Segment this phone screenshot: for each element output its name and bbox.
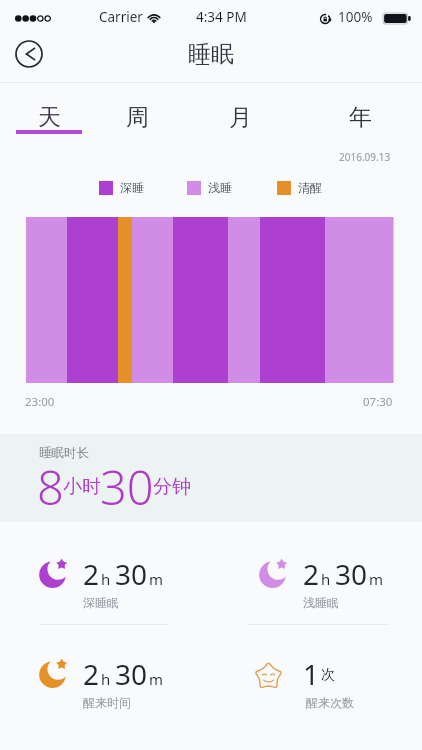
staticText: 8 <box>37 455 64 519</box>
button[interactable]: 清醒 <box>277 180 322 195</box>
staticText: 深睡 <box>120 180 144 195</box>
staticText: 年 <box>349 103 372 132</box>
staticText: 次 <box>321 666 335 684</box>
button[interactable]: 浅睡 <box>187 180 232 195</box>
staticText: 2 <box>83 555 100 593</box>
staticText: 清醒 <box>298 180 322 195</box>
button[interactable]: 深睡 <box>99 180 144 195</box>
staticText: 醒来次数 <box>306 695 354 710</box>
button[interactable]: 1 <box>220 645 422 725</box>
staticText: 30 <box>115 655 148 693</box>
button[interactable]: 2 <box>220 545 422 625</box>
staticText: m <box>149 569 164 589</box>
staticText: 4:34 PM <box>196 8 247 26</box>
button[interactable]: 月 <box>207 83 273 133</box>
staticText: 周 <box>126 103 149 132</box>
button[interactable]: 年 <box>327 83 393 133</box>
staticText: 分钟 <box>153 475 191 499</box>
staticText: 30 <box>115 555 148 593</box>
staticText: 07:30 <box>363 394 393 410</box>
button[interactable]: 2 <box>0 545 211 625</box>
staticText: h <box>101 569 111 589</box>
button[interactable]: 2 <box>0 645 211 725</box>
staticText: 30 <box>100 455 154 519</box>
staticText: 天 <box>38 103 61 132</box>
staticText: h <box>101 669 111 689</box>
staticText: 睡眠时长 <box>39 445 89 461</box>
staticText: 深睡眠 <box>83 595 119 610</box>
staticText: 睡眠 <box>188 40 234 69</box>
button[interactable]: 周 <box>104 83 170 133</box>
staticText: 30 <box>335 555 368 593</box>
staticText: 2016.09.13 <box>339 150 391 164</box>
staticText: 100% <box>338 8 373 26</box>
staticText: 1 <box>303 655 320 693</box>
staticText: 2 <box>83 655 100 693</box>
button[interactable]: 睡眠时长 <box>0 434 422 522</box>
staticText: 浅睡 <box>208 180 232 195</box>
button[interactable]: 天 <box>16 83 82 133</box>
button[interactable]: Back <box>14 39 44 69</box>
staticText: m <box>149 669 164 689</box>
staticText: 小时 <box>63 475 101 499</box>
staticText: 23:00 <box>25 394 55 410</box>
staticText: 月 <box>229 103 252 132</box>
staticText: 2 <box>303 555 320 593</box>
staticText: m <box>369 569 384 589</box>
staticText: h <box>321 569 331 589</box>
staticText: Carrier <box>99 8 143 26</box>
staticText: 醒来时间 <box>83 695 131 710</box>
staticText: 浅睡眠 <box>303 595 339 610</box>
